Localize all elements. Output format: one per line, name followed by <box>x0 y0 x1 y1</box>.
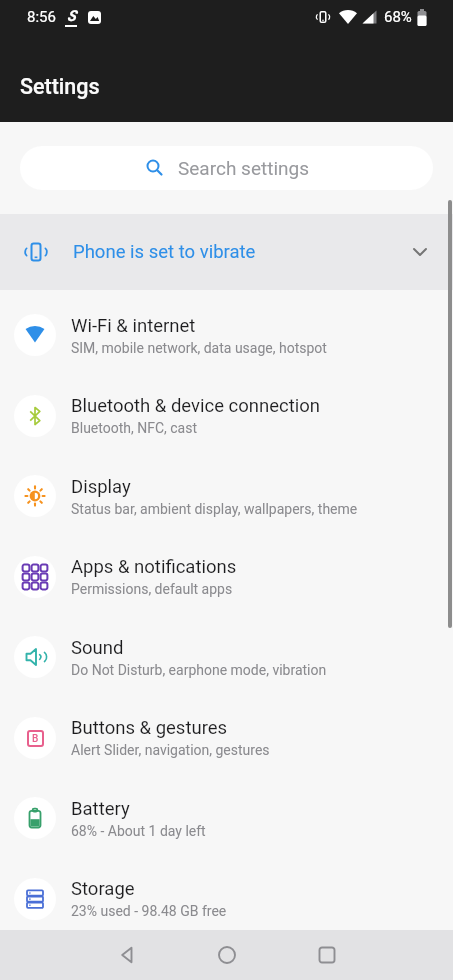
button[interactable] <box>102 930 152 980</box>
staticText: Wi-Fi & internet <box>71 315 196 337</box>
button[interactable]: Apps & notifications <box>0 536 453 617</box>
staticText: Bluetooth, NFC, cast <box>71 420 198 436</box>
button[interactable]: Display <box>0 456 453 536</box>
button[interactable]: Battery <box>0 778 453 858</box>
button[interactable]: B <box>0 697 453 778</box>
staticText: Do Not Disturb, earphone mode, vibration <box>71 662 327 678</box>
staticText: B <box>32 733 39 745</box>
staticText: 23% used - 98.48 GB free <box>71 903 227 919</box>
staticText: Settings <box>20 74 100 99</box>
button[interactable]: Storage <box>0 858 453 939</box>
staticText: 68% <box>384 8 412 26</box>
button[interactable]: Search settings <box>20 146 433 190</box>
staticText: Status bar, ambient display, wallpapers,… <box>71 501 358 517</box>
staticText: Battery <box>71 798 130 820</box>
staticText: 68% - About 1 day left <box>71 823 206 839</box>
staticText: Bluetooth & device connection <box>71 395 321 417</box>
staticText: Alert Slider, navigation, gestures <box>71 742 270 758</box>
button[interactable]: Wi-Fi & internet <box>0 295 453 375</box>
button[interactable] <box>202 930 252 980</box>
staticText: Storage <box>71 878 135 900</box>
button[interactable]: Sound <box>0 617 453 697</box>
staticText: 8:56 <box>27 8 56 26</box>
staticText: Buttons & gestures <box>71 717 228 739</box>
staticText: S <box>67 7 76 25</box>
staticText: SIM, mobile network, data usage, hotspot <box>71 340 327 356</box>
staticText: Apps & notifications <box>71 556 237 578</box>
staticText: Permissions, default apps <box>71 581 233 597</box>
staticText: Search settings <box>178 157 309 179</box>
staticText: Display <box>71 476 131 498</box>
button[interactable]: Bluetooth & device connection <box>0 375 453 456</box>
staticText: Phone is set to vibrate <box>73 241 256 263</box>
button[interactable] <box>302 930 352 980</box>
staticText: Sound <box>71 637 124 659</box>
button[interactable]: Phone is set to vibrate <box>0 214 453 290</box>
